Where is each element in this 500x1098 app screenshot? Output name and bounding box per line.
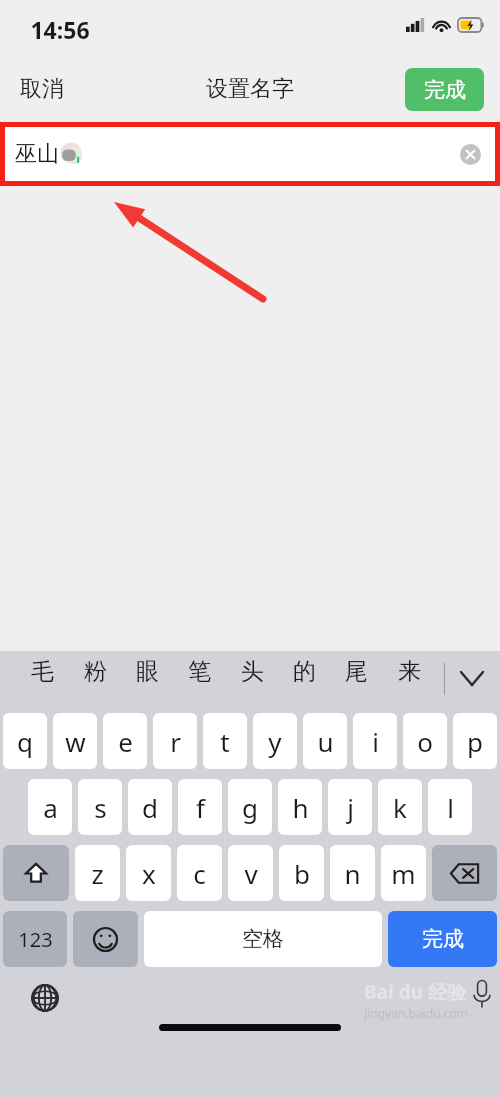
button[interactable]: g — [228, 779, 272, 835]
staticText: 巫山 — [15, 140, 59, 168]
button[interactable]: Switch language — [28, 981, 62, 1015]
staticText: e — [118, 724, 133, 759]
button[interactable]: u — [303, 713, 347, 769]
button[interactable]: a — [28, 779, 72, 835]
button[interactable]: w — [53, 713, 97, 769]
staticText: t — [220, 724, 230, 759]
button[interactable]: t — [203, 713, 247, 769]
button[interactable]: k — [378, 779, 422, 835]
staticText: z — [91, 856, 104, 891]
staticText: h — [292, 790, 309, 825]
staticText: 毛 — [31, 657, 54, 686]
staticText: x — [142, 856, 156, 891]
staticText: f — [196, 790, 205, 825]
staticText: 空格 — [242, 926, 284, 952]
button[interactable]: 尾 — [339, 651, 374, 692]
button[interactable]: m — [381, 845, 426, 901]
staticText: n — [344, 856, 361, 891]
staticText: p — [467, 724, 483, 759]
button[interactable]: 的 — [287, 651, 322, 692]
staticText: y — [268, 724, 282, 759]
staticText: 的 — [293, 657, 316, 686]
button[interactable]: y — [253, 713, 297, 769]
button[interactable]: c — [177, 845, 222, 901]
staticText: v — [244, 856, 258, 891]
button[interactable]: 完成 — [405, 68, 484, 111]
staticText: w — [65, 724, 86, 759]
button[interactable]: 空格 — [144, 911, 382, 967]
staticText: 设置名字 — [206, 75, 294, 103]
button[interactable]: b — [279, 845, 324, 901]
staticText: l — [447, 790, 454, 825]
button[interactable]: x — [126, 845, 171, 901]
button[interactable]: 完成 — [388, 911, 497, 967]
staticText: o — [417, 724, 433, 759]
staticText: 取消 — [20, 75, 64, 103]
button[interactable]: e — [103, 713, 147, 769]
staticText: 笔 — [188, 657, 211, 686]
button[interactable]: s — [78, 779, 122, 835]
staticText: 粉 — [84, 657, 107, 686]
button[interactable]: 123 — [3, 911, 67, 967]
staticText: i — [372, 724, 379, 759]
staticText: u — [317, 724, 334, 759]
staticText: 尾 — [345, 657, 368, 686]
button[interactable]: i — [353, 713, 397, 769]
staticText: 123 — [18, 926, 53, 953]
button[interactable]: 粉 — [78, 651, 113, 692]
staticText: a — [43, 790, 58, 825]
staticText: g — [242, 790, 258, 825]
staticText: jingyan.baidu.com — [364, 1005, 468, 1021]
staticText: 来 — [398, 657, 421, 686]
staticText: Bai du 经验 — [364, 979, 466, 1005]
staticText: 14:56 — [30, 14, 90, 45]
staticText: c — [193, 856, 206, 891]
button[interactable]: v — [228, 845, 273, 901]
button[interactable]: Backspace — [432, 845, 497, 901]
staticText: 眼 — [136, 657, 159, 686]
button[interactable]: f — [178, 779, 222, 835]
button[interactable]: h — [278, 779, 322, 835]
staticText: j — [347, 790, 354, 825]
button[interactable]: j — [328, 779, 372, 835]
staticText: s — [94, 790, 107, 825]
staticText: b — [294, 856, 310, 891]
button[interactable]: 来 — [392, 651, 427, 692]
staticText: k — [393, 790, 407, 825]
staticText: m — [391, 856, 416, 891]
button[interactable]: r — [153, 713, 197, 769]
button[interactable]: l — [428, 779, 472, 835]
button[interactable]: Clear text — [460, 144, 481, 165]
staticText: 头 — [241, 657, 264, 686]
button[interactable]: 笔 — [182, 651, 217, 692]
button[interactable]: 巫山 — [5, 127, 495, 181]
button[interactable]: 毛 — [25, 651, 60, 692]
button[interactable]: Emoji — [73, 911, 138, 967]
button[interactable]: n — [330, 845, 375, 901]
button[interactable]: Collapse keyboard — [444, 651, 500, 706]
staticText: 完成 — [422, 926, 464, 952]
button[interactable]: z — [75, 845, 120, 901]
button[interactable]: 眼 — [130, 651, 165, 692]
staticText: q — [17, 724, 33, 759]
button[interactable]: Shift — [3, 845, 69, 901]
staticText: d — [142, 790, 158, 825]
staticText: r — [170, 724, 181, 759]
staticText: 完成 — [424, 77, 466, 103]
button[interactable]: 头 — [235, 651, 270, 692]
button[interactable]: 取消 — [8, 67, 76, 111]
button[interactable]: o — [403, 713, 447, 769]
button[interactable]: p — [453, 713, 497, 769]
button[interactable]: d — [128, 779, 172, 835]
button[interactable]: q — [3, 713, 47, 769]
